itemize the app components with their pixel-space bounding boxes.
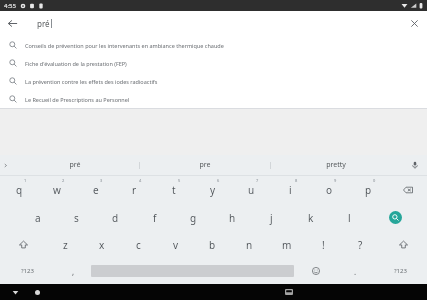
button[interactable]: Home [30,285,44,299]
staticText: pre [199,160,211,170]
button[interactable]: Switch keyboard [282,285,296,299]
button[interactable]: 7 [232,176,271,204]
button[interactable]: h [213,204,252,231]
button[interactable]: d [96,204,135,231]
staticText: v [173,238,179,252]
button[interactable]: z [47,231,83,258]
button[interactable]: Search [376,204,415,231]
staticText: a [35,211,41,225]
button[interactable]: m [268,231,305,258]
staticText: 4 [139,178,142,183]
button[interactable]: n [231,231,268,258]
staticText: 5 [178,178,181,183]
button[interactable]: Le Recueil de Prescriptions au Personnel [0,90,427,108]
staticText: 1 [24,178,27,183]
button[interactable]: 3 [76,176,115,204]
button[interactable]: pré [10,155,139,175]
staticText: ?123 [21,267,34,275]
button[interactable]: 2 [38,176,76,204]
staticText: 3 [100,178,103,183]
button[interactable]: j [252,204,291,231]
staticText: r [132,183,137,197]
staticText: l [348,211,351,225]
staticText: u [248,183,255,197]
button[interactable]: Hide keyboard [8,285,22,299]
button[interactable]: s [57,204,96,231]
staticText: ! [322,238,325,252]
staticText: h [229,211,236,225]
button[interactable]: x [83,231,120,258]
staticText: k [308,211,314,225]
button[interactable]: Shift [0,231,47,258]
staticText: La prévention contre les effets des iode… [25,78,158,85]
staticText: n [246,238,253,252]
staticText: Le Recueil de Prescriptions au Personnel [25,96,130,103]
button[interactable]: Emoji [294,258,337,284]
staticText: Conseils de prévention pour les interven… [25,42,224,49]
staticText: 2 [62,178,65,183]
button[interactable]: Voice input [403,155,427,175]
button[interactable]: 5 [154,176,193,204]
button[interactable]: Clear search [402,11,427,36]
button[interactable]: Back [0,11,25,36]
staticText: 7 [256,178,259,183]
staticText: 6 [217,178,220,183]
staticText: p [365,183,372,197]
button[interactable]: ?123 [0,258,55,284]
button[interactable]: k [291,204,330,231]
button[interactable]: pre [140,155,270,175]
staticText: q [16,183,23,197]
staticText: d [112,211,119,225]
button[interactable]: f [135,204,174,231]
staticText: pré [69,160,81,170]
button[interactable]: Fiche d'évaluation de la prestation (FEP… [0,54,427,72]
staticText: b [209,238,216,252]
staticText: s [74,211,79,225]
staticText: pretty [326,160,346,170]
button[interactable]: 4 [115,176,154,204]
staticText: f [153,211,157,225]
button[interactable]: 1 [0,176,38,204]
button[interactable]: ! [305,231,342,258]
button[interactable]: 8 [271,176,310,204]
button[interactable]: Conseils de prévention pour les interven… [0,36,427,54]
button[interactable]: La prévention contre les effets des iode… [0,72,427,90]
staticText: pré [37,18,50,29]
button[interactable]: b [194,231,231,258]
button[interactable]: Backspace [388,176,427,204]
staticText: y [210,183,216,197]
staticText: c [136,238,141,252]
staticText: Fiche d'évaluation de la prestation (FEP… [25,60,127,67]
staticText: o [326,183,333,197]
button[interactable]: a [18,204,57,231]
button[interactable]: , [55,258,91,284]
staticText: , [72,266,75,277]
button[interactable]: More suggestions [0,155,10,175]
staticText: z [63,238,68,252]
staticText: ?123 [394,267,407,275]
button[interactable]: 0 [349,176,388,204]
button[interactable]: g [174,204,213,231]
button[interactable]: c [120,231,157,258]
staticText: w [53,183,61,197]
staticText: e [93,183,99,197]
button[interactable]: 6 [193,176,232,204]
button[interactable]: 9 [310,176,349,204]
button[interactable]: ?123 [373,258,427,284]
staticText: ? [358,238,363,252]
staticText: j [270,211,273,225]
staticText: . [354,266,357,277]
button[interactable]: Shift [379,231,427,258]
button[interactable]: v [157,231,194,258]
staticText: 0 [373,178,376,183]
staticText: t [172,183,176,197]
staticText: x [99,238,105,252]
button[interactable]: l [330,204,369,231]
button[interactable]: pretty [271,155,401,175]
staticText: 4:55 [4,2,16,10]
staticText: 9 [334,178,337,183]
button[interactable]: ? [342,231,379,258]
staticText: g [190,211,197,225]
